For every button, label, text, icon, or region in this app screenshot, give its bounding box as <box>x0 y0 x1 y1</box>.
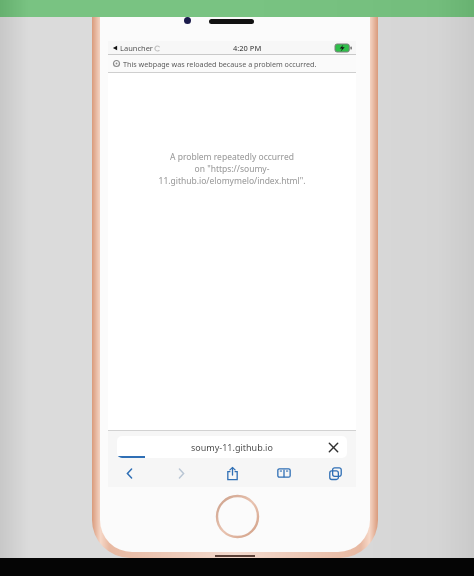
button[interactable]: soumy-11.github.io <box>117 436 347 458</box>
button[interactable]: Share <box>221 462 243 484</box>
button[interactable]: Bookmarks <box>273 462 295 484</box>
staticText: soumy-11.github.io <box>191 441 273 453</box>
button[interactable]: Stop loading <box>328 442 339 453</box>
button[interactable]: Launcher <box>112 43 160 53</box>
button[interactable]: Tabs <box>324 462 346 484</box>
staticText: A problem repeatedly occurred on "https:… <box>108 151 356 187</box>
staticText: Launcher <box>120 43 153 53</box>
button[interactable]: Back <box>118 462 140 484</box>
staticText: This webpage was reloaded because a prob… <box>123 59 317 69</box>
staticText: 4:20 PM <box>233 43 262 53</box>
button[interactable]: Home <box>215 494 260 539</box>
button[interactable]: Forward <box>170 462 192 484</box>
button[interactable]: This webpage was reloaded because a prob… <box>108 55 356 72</box>
